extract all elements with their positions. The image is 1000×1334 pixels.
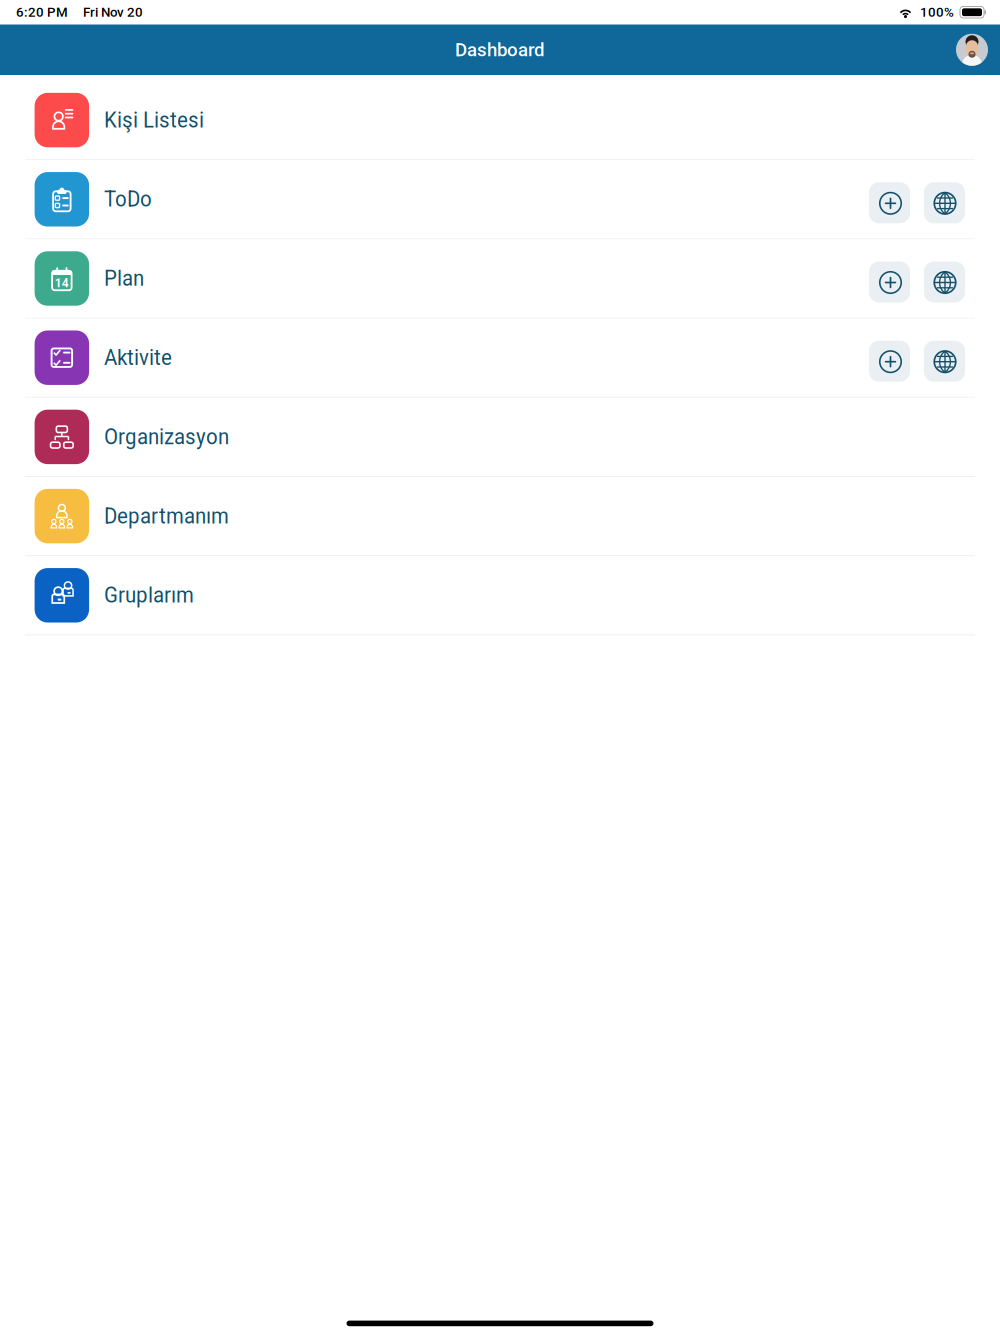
button[interactable]: Add ToDo xyxy=(869,182,910,223)
staticText: Organizasyon xyxy=(104,424,229,449)
button[interactable]: Open ToDo on the web xyxy=(924,182,965,223)
button[interactable]: 14 xyxy=(0,239,1000,318)
staticText: 100% xyxy=(920,4,954,20)
button[interactable]: Profile xyxy=(952,30,992,70)
staticText: Fri Nov 20 xyxy=(83,4,143,20)
button[interactable]: Departmanım xyxy=(0,477,1000,555)
button[interactable]: Aktivite xyxy=(0,319,1000,397)
staticText: Gruplarım xyxy=(104,583,194,608)
staticText: Plan xyxy=(104,266,144,291)
staticText: Departmanım xyxy=(104,504,229,529)
button[interactable]: Organizasyon xyxy=(0,398,1000,476)
button[interactable]: ToDo xyxy=(0,160,1000,238)
staticText: Kişi Listesi xyxy=(104,108,204,133)
button[interactable]: Add Aktivite xyxy=(869,341,910,382)
staticText: Aktivite xyxy=(104,345,172,370)
button[interactable]: Open Aktivite on the web xyxy=(924,341,965,382)
staticText: 14 xyxy=(55,276,69,290)
button[interactable]: Gruplarım xyxy=(0,556,1000,634)
button[interactable]: Add Plan xyxy=(869,261,910,302)
button[interactable]: Kişi Listesi xyxy=(0,81,1000,159)
button[interactable]: Open Plan on the web xyxy=(924,261,965,302)
staticText: ToDo xyxy=(104,187,152,212)
staticText: 6:20 PM xyxy=(16,4,68,20)
staticText: Dashboard xyxy=(455,39,545,61)
